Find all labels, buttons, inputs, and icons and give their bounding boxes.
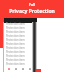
- staticText: Protection item: [6, 46, 25, 50]
- staticText: Protection item: [6, 50, 25, 54]
- staticText: Protection item: [6, 34, 25, 38]
- button[interactable]: Protection item: [5, 46, 32, 50]
- button[interactable]: Protection item: [5, 38, 32, 42]
- staticText: Protection item: [6, 38, 25, 42]
- staticText: Full: [29, 3, 35, 7]
- button[interactable]: Protection item: [5, 34, 32, 38]
- button[interactable]: Tools: [19, 66, 26, 72]
- button[interactable]: Me: [26, 66, 33, 72]
- button[interactable]: Protection item: [5, 54, 32, 58]
- staticText: Protection item: [6, 58, 25, 62]
- staticText: Protection item: [6, 22, 25, 26]
- staticText: Protection item: [6, 42, 25, 46]
- button[interactable]: Protection item: [5, 30, 32, 34]
- button[interactable]: Protection item: [5, 50, 32, 54]
- button[interactable]: Protection item: [5, 42, 32, 46]
- staticText: Protection item: [6, 26, 25, 30]
- button[interactable]: Protection item: [5, 22, 32, 26]
- button[interactable]: Home: [6, 66, 12, 72]
- button[interactable]: Scan: [12, 66, 19, 72]
- staticText: Protection item: [6, 62, 25, 66]
- button[interactable]: Protection item: [5, 62, 32, 66]
- staticText: Protection item: [6, 54, 25, 58]
- button[interactable]: Protection item: [5, 58, 32, 62]
- button[interactable]: Protection item: [5, 26, 32, 30]
- staticText: Protection item: [6, 30, 25, 34]
- staticText: Privacy Protection: [9, 8, 55, 15]
